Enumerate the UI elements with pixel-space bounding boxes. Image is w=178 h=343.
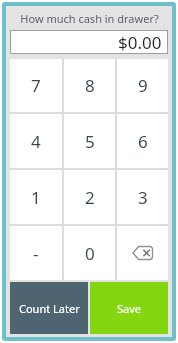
staticText: 5	[85, 130, 95, 153]
button[interactable]: 8	[64, 59, 115, 112]
button[interactable]: 0	[64, 226, 115, 280]
staticText: Save	[117, 301, 142, 316]
button[interactable]: Count Later	[10, 282, 88, 334]
button[interactable]: 6	[117, 114, 168, 168]
button[interactable]: 5	[64, 114, 115, 168]
staticText: 9	[138, 74, 148, 97]
button[interactable]: Backspace	[117, 226, 168, 280]
button[interactable]: 7	[10, 59, 62, 112]
button[interactable]: 2	[64, 170, 115, 224]
staticText: $0.00	[118, 31, 162, 54]
staticText: How much cash in drawer?	[20, 11, 159, 26]
staticText: 0	[85, 242, 95, 265]
staticText: 4	[31, 130, 41, 153]
staticText: 2	[85, 186, 95, 209]
staticText: 8	[85, 74, 95, 97]
staticText: -	[33, 242, 39, 265]
staticText: Count Later	[19, 301, 80, 316]
staticText: 6	[138, 130, 148, 153]
button[interactable]: Save	[90, 282, 168, 334]
staticText: 7	[31, 74, 41, 97]
button[interactable]: -	[10, 226, 62, 280]
staticText: 1	[31, 186, 41, 209]
button[interactable]: 9	[117, 59, 168, 112]
button[interactable]: 3	[117, 170, 168, 224]
staticText: 3	[138, 186, 148, 209]
button[interactable]: 1	[10, 170, 62, 224]
button[interactable]: 4	[10, 114, 62, 168]
